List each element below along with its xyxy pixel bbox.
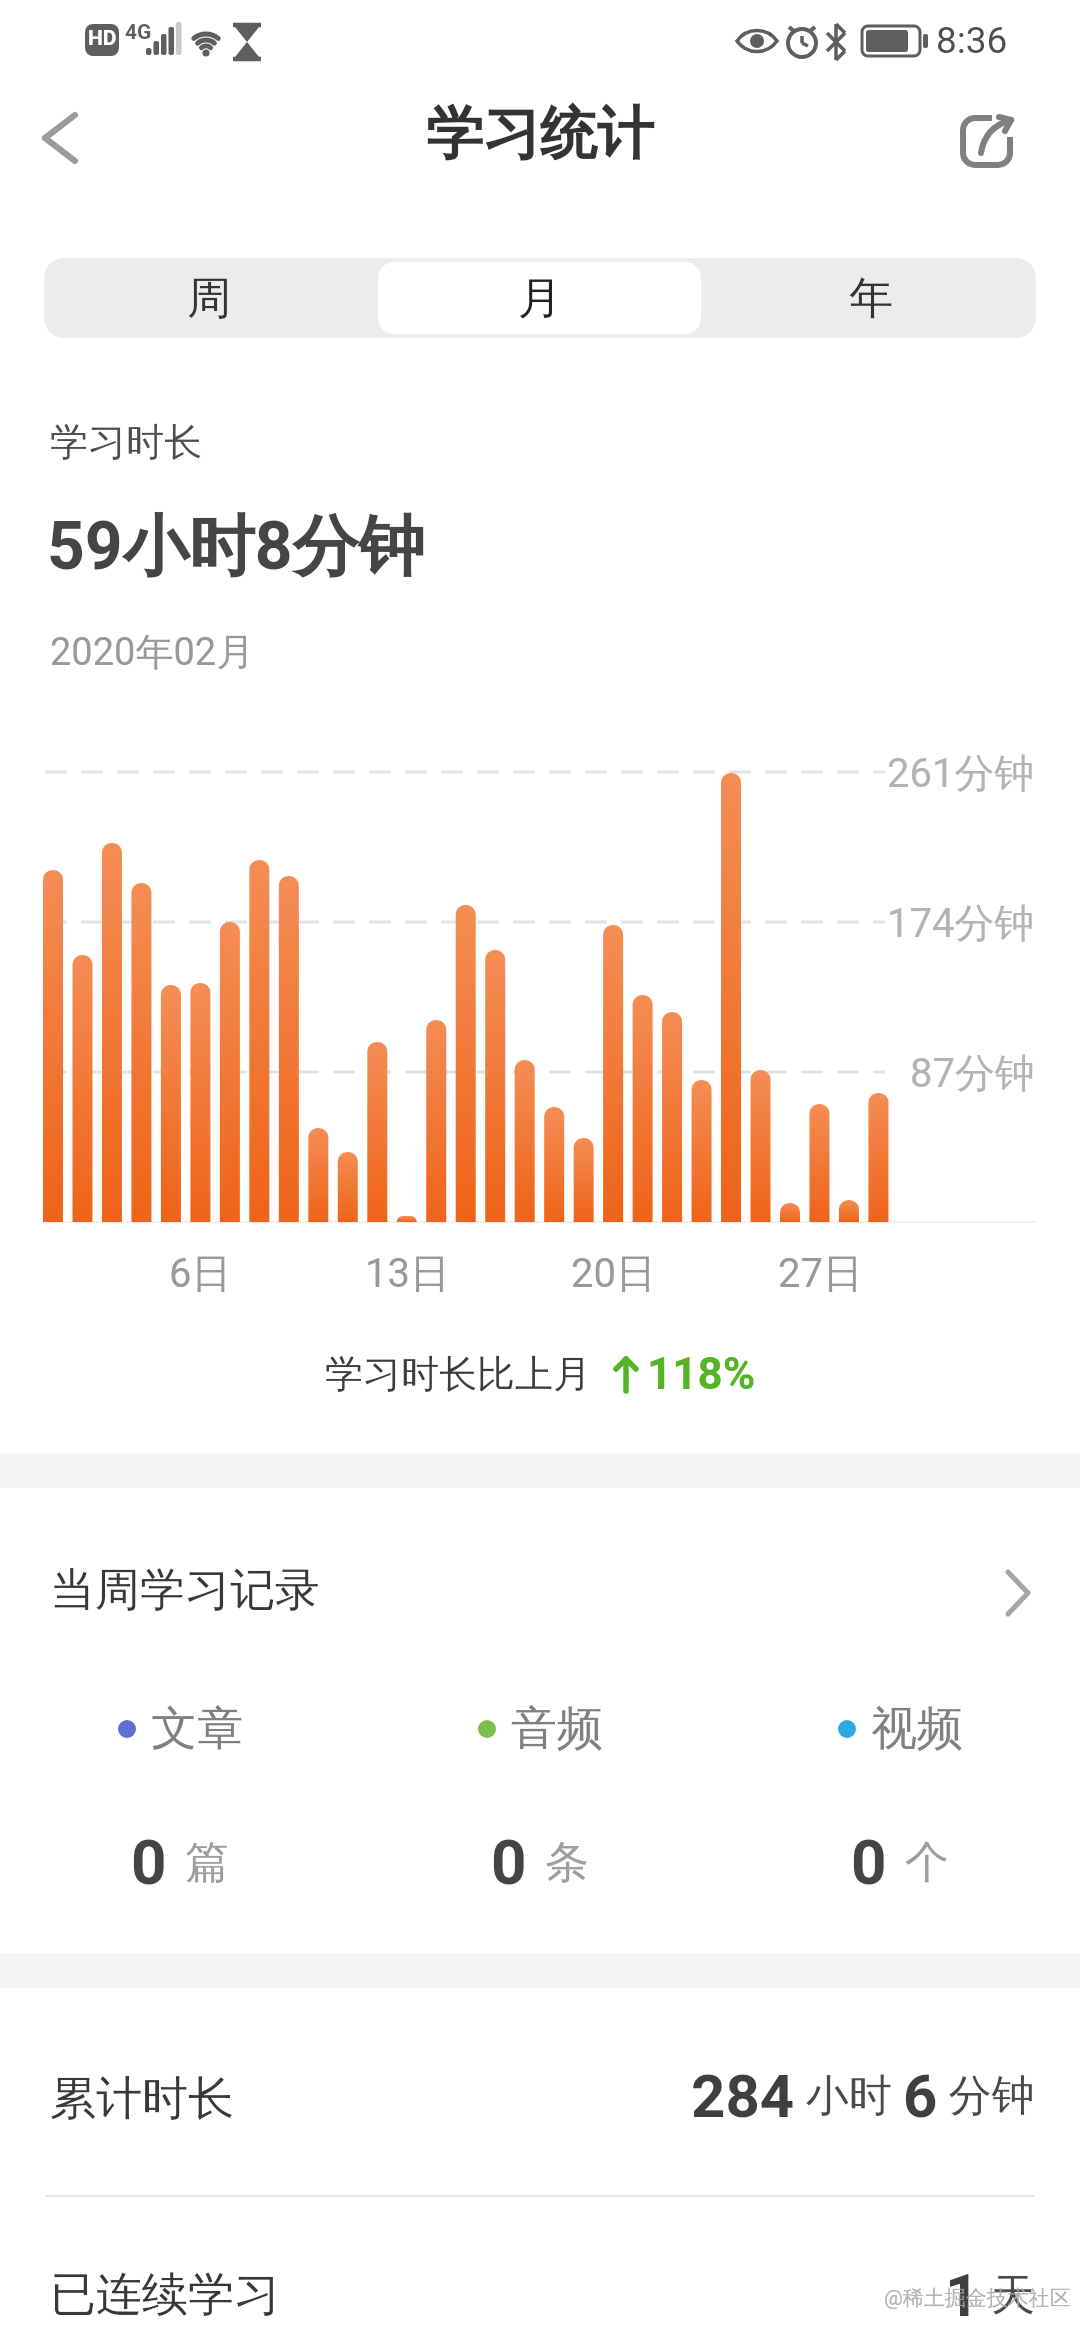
button[interactable]: 已连续学习 <box>0 2250 1080 2340</box>
staticText: 174分钟 <box>887 898 1035 948</box>
staticText: 1 <box>945 2260 980 2330</box>
button[interactable] <box>20 95 100 180</box>
staticText: 分钟 <box>938 2069 1035 2123</box>
staticText: 学习时长 <box>50 418 202 466</box>
staticText: 天 <box>980 2268 1035 2323</box>
staticText: 周 <box>187 271 231 326</box>
staticText: 文章 <box>151 1700 243 1758</box>
button[interactable]: 周 <box>44 258 374 338</box>
staticText: 27日 <box>778 1248 863 1298</box>
staticText: 月 <box>518 271 562 326</box>
staticText: 13日 <box>365 1248 450 1298</box>
staticText: 视频 <box>871 1700 963 1758</box>
button[interactable]: 累计时长 <box>0 2050 1080 2150</box>
staticText: 篇 <box>185 1835 229 1890</box>
staticText: 0 <box>491 1826 527 1899</box>
button[interactable]: 文章 <box>0 1700 360 1910</box>
staticText: 0 <box>131 1826 167 1899</box>
staticText: 118% <box>647 1348 756 1400</box>
staticText: @稀土掘金技术社区 <box>884 2285 1071 2311</box>
staticText: 4G <box>125 20 152 45</box>
button[interactable]: 当周学习记录 <box>0 1550 1080 1640</box>
staticText: 261分钟 <box>887 748 1035 798</box>
staticText: 小时 <box>795 2069 903 2123</box>
staticText: 20日 <box>571 1248 656 1298</box>
staticText: 0 <box>851 1826 887 1899</box>
button[interactable]: 年 <box>705 258 1036 338</box>
staticText: 累计时长 <box>50 2070 234 2128</box>
staticText: HD <box>88 26 117 51</box>
staticText: 8:36 <box>936 19 1008 62</box>
staticText: 2020年02月 <box>50 628 255 676</box>
button[interactable]: 音频 <box>360 1700 720 1910</box>
staticText: 条 <box>545 1835 589 1890</box>
staticText: 学习时长比上月 <box>325 1350 591 1398</box>
button[interactable] <box>945 95 1035 180</box>
staticText: 个 <box>905 1835 949 1890</box>
staticText: 87分钟 <box>910 1048 1035 1098</box>
staticText: 已连续学习 <box>50 2266 280 2324</box>
staticText: 6日 <box>169 1248 232 1298</box>
staticText: 年 <box>849 271 893 326</box>
button[interactable]: 视频 <box>720 1700 1080 1910</box>
staticText: 284 <box>691 2061 795 2131</box>
staticText: 当周学习记录 <box>50 1562 320 1619</box>
staticText: 6 <box>903 2061 938 2131</box>
staticText: 59小时8分钟 <box>47 505 425 588</box>
staticText: 学习统计 <box>426 98 654 170</box>
button[interactable]: 月 <box>378 262 701 334</box>
staticText: 音频 <box>511 1700 603 1758</box>
